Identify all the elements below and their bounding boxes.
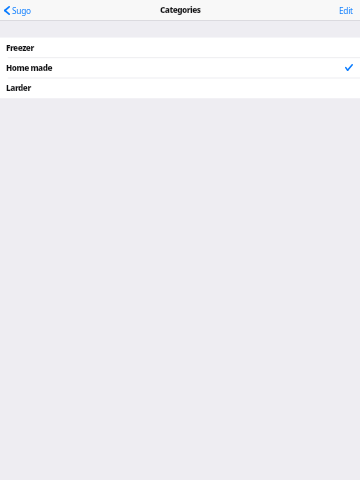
other: Selected — [345, 64, 353, 71]
button[interactable]: Edit — [332, 2, 360, 19]
staticText: Categories — [160, 4, 201, 15]
staticText: Freezer — [6, 42, 34, 53]
button[interactable]: Freezer — [0, 38, 360, 58]
button[interactable]: Larder — [0, 78, 360, 98]
button[interactable]: Sugo — [0, 2, 35, 19]
button[interactable]: Home made — [0, 58, 360, 78]
staticText: Sugo — [12, 5, 31, 16]
staticText: Edit — [339, 5, 353, 16]
staticText: Home made — [6, 62, 53, 73]
staticText: Larder — [6, 82, 31, 93]
